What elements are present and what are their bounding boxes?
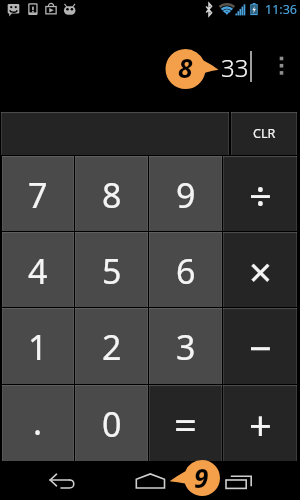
staticText: 9 bbox=[176, 172, 196, 218]
button[interactable]: 1 bbox=[2, 308, 74, 384]
button[interactable]: 0 bbox=[75, 385, 148, 461]
button[interactable]: Formula bbox=[1, 112, 229, 155]
staticText: 1 bbox=[28, 324, 48, 370]
button[interactable]: 8 bbox=[75, 156, 148, 231]
staticText: CLR bbox=[253, 125, 276, 142]
button[interactable]: . bbox=[2, 385, 74, 461]
button[interactable]: More options bbox=[267, 53, 293, 79]
button[interactable]: + bbox=[223, 385, 297, 461]
staticText: 7 bbox=[28, 172, 48, 218]
button[interactable]: 4 bbox=[2, 232, 74, 307]
staticText: 0 bbox=[102, 401, 122, 447]
staticText: − bbox=[249, 320, 272, 374]
button[interactable]: 6 bbox=[149, 232, 222, 307]
button[interactable]: 5 bbox=[75, 232, 148, 307]
staticText: ÷ bbox=[249, 168, 272, 222]
button[interactable]: 3 bbox=[149, 308, 222, 384]
button[interactable]: ÷ bbox=[223, 156, 297, 231]
staticText: . bbox=[33, 399, 43, 445]
staticText: 6 bbox=[176, 248, 196, 294]
button[interactable]: = bbox=[149, 385, 222, 461]
button[interactable]: 9 bbox=[149, 156, 222, 231]
staticText: × bbox=[249, 244, 272, 298]
staticText: 11:36 bbox=[265, 1, 297, 18]
staticText: 4 bbox=[28, 248, 48, 294]
staticText: 2 bbox=[102, 324, 122, 370]
staticText: 8 bbox=[178, 50, 193, 85]
staticText: 33 bbox=[221, 51, 249, 84]
staticText: 3 bbox=[176, 324, 196, 370]
button[interactable]: − bbox=[223, 308, 297, 384]
button[interactable]: Back bbox=[0, 461, 100, 500]
button[interactable]: CLR bbox=[231, 112, 297, 155]
button[interactable]: 7 bbox=[2, 156, 74, 231]
staticText: + bbox=[249, 397, 272, 451]
staticText: 9 bbox=[194, 460, 209, 495]
button[interactable]: 2 bbox=[75, 308, 148, 384]
button[interactable]: Home bbox=[100, 461, 200, 500]
staticText: = bbox=[174, 397, 197, 451]
staticText: 8 bbox=[102, 172, 122, 218]
button[interactable]: Recent apps bbox=[200, 461, 300, 500]
staticText: 5 bbox=[102, 248, 122, 294]
button[interactable]: × bbox=[223, 232, 297, 307]
